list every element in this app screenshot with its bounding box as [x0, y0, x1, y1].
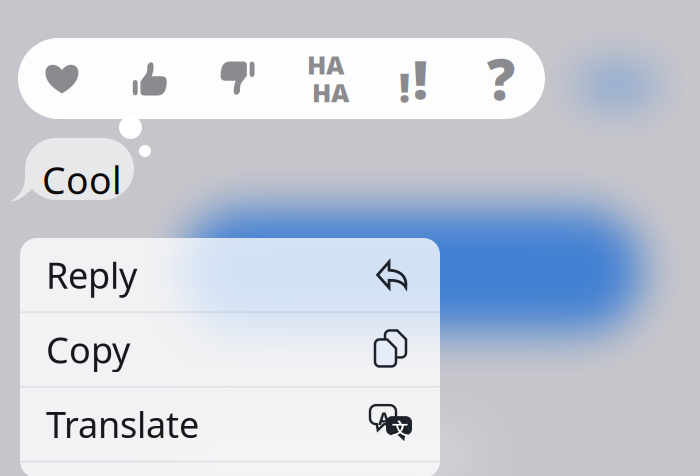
button[interactable]: Exclamation: [369, 38, 457, 119]
button[interactable]: Copy: [20, 313, 440, 386]
button[interactable]: Translate: [20, 387, 440, 461]
button[interactable]: Thumbs up: [106, 38, 194, 119]
button[interactable]: Question mark: [457, 38, 545, 119]
button[interactable]: Love: [18, 38, 106, 119]
button[interactable]: Thumbs down: [194, 38, 281, 119]
staticText: 文: [392, 419, 408, 439]
staticText: ?: [487, 41, 515, 116]
staticText: Cool: [42, 155, 122, 205]
staticText: Translate: [46, 400, 199, 448]
button[interactable]: Reply: [20, 238, 440, 311]
staticText: Reply: [46, 251, 137, 299]
staticText: !: [413, 43, 428, 114]
staticText: HA: [312, 75, 349, 109]
staticText: !: [399, 61, 411, 114]
staticText: Copy: [46, 325, 130, 373]
staticText: HA: [307, 48, 344, 81]
staticText: A: [378, 407, 390, 430]
button[interactable]: Haha: [281, 38, 369, 119]
